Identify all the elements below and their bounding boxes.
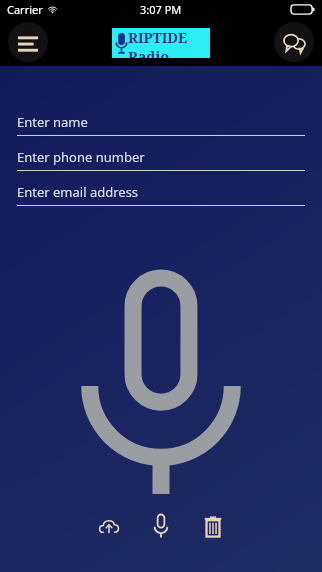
staticText: RIPTIDE Radio [128, 28, 210, 58]
button[interactable]: Chat [274, 22, 314, 62]
staticText: Enter phone number [17, 148, 145, 166]
staticText: Enter name [17, 113, 88, 131]
button[interactable]: Enter email address [17, 183, 305, 206]
button[interactable]: Upload to cloud [89, 506, 129, 546]
button[interactable]: Delete [193, 506, 233, 546]
staticText: Carrier [7, 2, 43, 17]
staticText: 3:07 PM [140, 2, 182, 17]
button[interactable]: RIPTIDE Radio [112, 28, 210, 58]
button[interactable]: Enter phone number [17, 148, 305, 171]
button[interactable]: Record [141, 506, 181, 546]
button[interactable]: Enter name [17, 113, 305, 136]
staticText: Enter email address [17, 183, 139, 201]
button[interactable]: Menu [8, 22, 48, 62]
